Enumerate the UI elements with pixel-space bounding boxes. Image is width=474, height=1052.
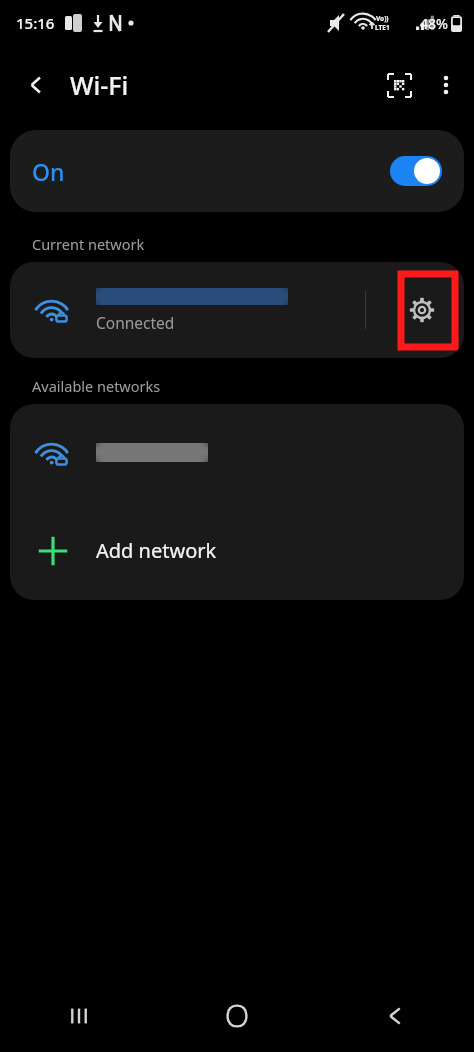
staticText: On — [32, 156, 65, 187]
button[interactable]: More options — [422, 61, 470, 109]
button[interactable]: Add network — [10, 501, 464, 600]
button[interactable]: Home — [158, 980, 316, 1052]
button[interactable]: Scan QR code — [376, 62, 422, 108]
staticText: Connected — [96, 312, 175, 333]
staticText: Wi-Fi — [70, 68, 129, 102]
staticText: 15:16 — [16, 13, 55, 33]
button[interactable]: Back — [14, 63, 58, 107]
button[interactable]: Connected — [10, 262, 464, 358]
button[interactable]: On — [10, 130, 464, 212]
button[interactable]: Recent apps — [0, 980, 158, 1052]
staticText: LTE1 — [375, 23, 390, 32]
staticText: 48% — [420, 14, 448, 33]
staticText: Available networks — [32, 376, 161, 396]
staticText: Add network — [96, 537, 217, 564]
button[interactable]: Back — [316, 980, 474, 1052]
button[interactable] — [10, 404, 464, 501]
staticText: Vo)) — [376, 14, 389, 23]
staticText: Current network — [32, 234, 145, 254]
button[interactable]: Network settings — [400, 288, 444, 332]
